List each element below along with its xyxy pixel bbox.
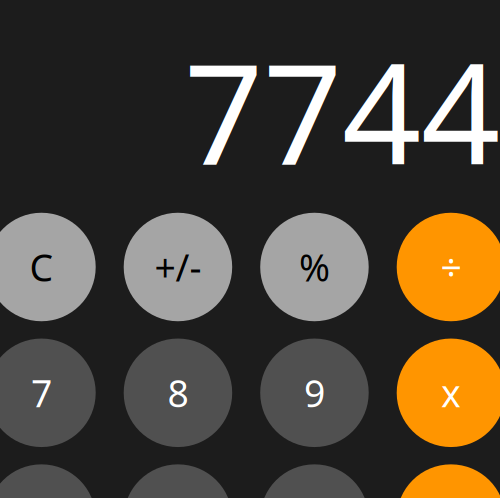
staticText: x [441,368,461,418]
button[interactable]: 8 [124,339,232,447]
button[interactable]: 5 [124,464,232,498]
staticText: % [299,242,330,292]
button[interactable]: Divide [397,213,500,321]
staticText: 9 [304,368,325,418]
staticText: 8 [167,368,188,418]
button[interactable]: Clear [0,213,96,321]
button[interactable]: Percent [260,213,369,321]
button[interactable]: Multiply [397,339,500,447]
button[interactable]: 9 [260,339,369,447]
button[interactable]: Plus minus [124,213,232,321]
staticText: 7 [31,368,52,418]
button[interactable]: 4 [0,464,96,498]
staticText: +/- [154,242,201,292]
button[interactable]: 6 [260,464,369,498]
staticText: C [29,242,53,292]
button[interactable]: Subtract [397,464,500,498]
button[interactable]: 7 [0,339,96,447]
staticText: 7744 [184,19,500,203]
staticText: ÷ [440,242,461,292]
